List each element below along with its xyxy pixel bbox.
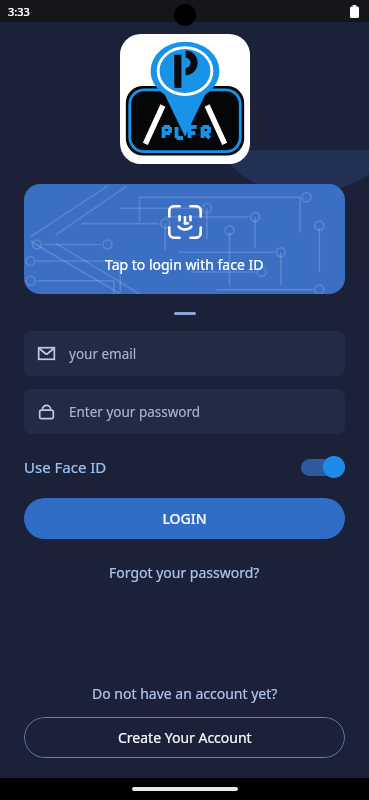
button[interactable]: your email <box>24 331 345 376</box>
button[interactable]: Use Face ID <box>24 450 345 484</box>
button[interactable]: Forgot your password? <box>0 563 369 582</box>
button[interactable]: LOGIN <box>24 498 345 539</box>
staticText: Enter your password <box>69 403 201 421</box>
staticText: Create Your Account <box>118 728 252 747</box>
button[interactable]: Create Your Account <box>24 717 345 758</box>
staticText: LOGIN <box>162 509 207 528</box>
staticText: Tap to login with face ID <box>105 255 264 274</box>
staticText: your email <box>69 345 137 363</box>
staticText: 3:33 <box>8 4 30 19</box>
staticText: Do not have an account yet? <box>92 684 278 703</box>
staticText: Use Face ID <box>24 457 107 477</box>
staticText: Forgot your password? <box>109 563 260 582</box>
button[interactable]: Enter your password <box>24 389 345 434</box>
button[interactable]: Tap to login with face ID <box>24 184 345 294</box>
